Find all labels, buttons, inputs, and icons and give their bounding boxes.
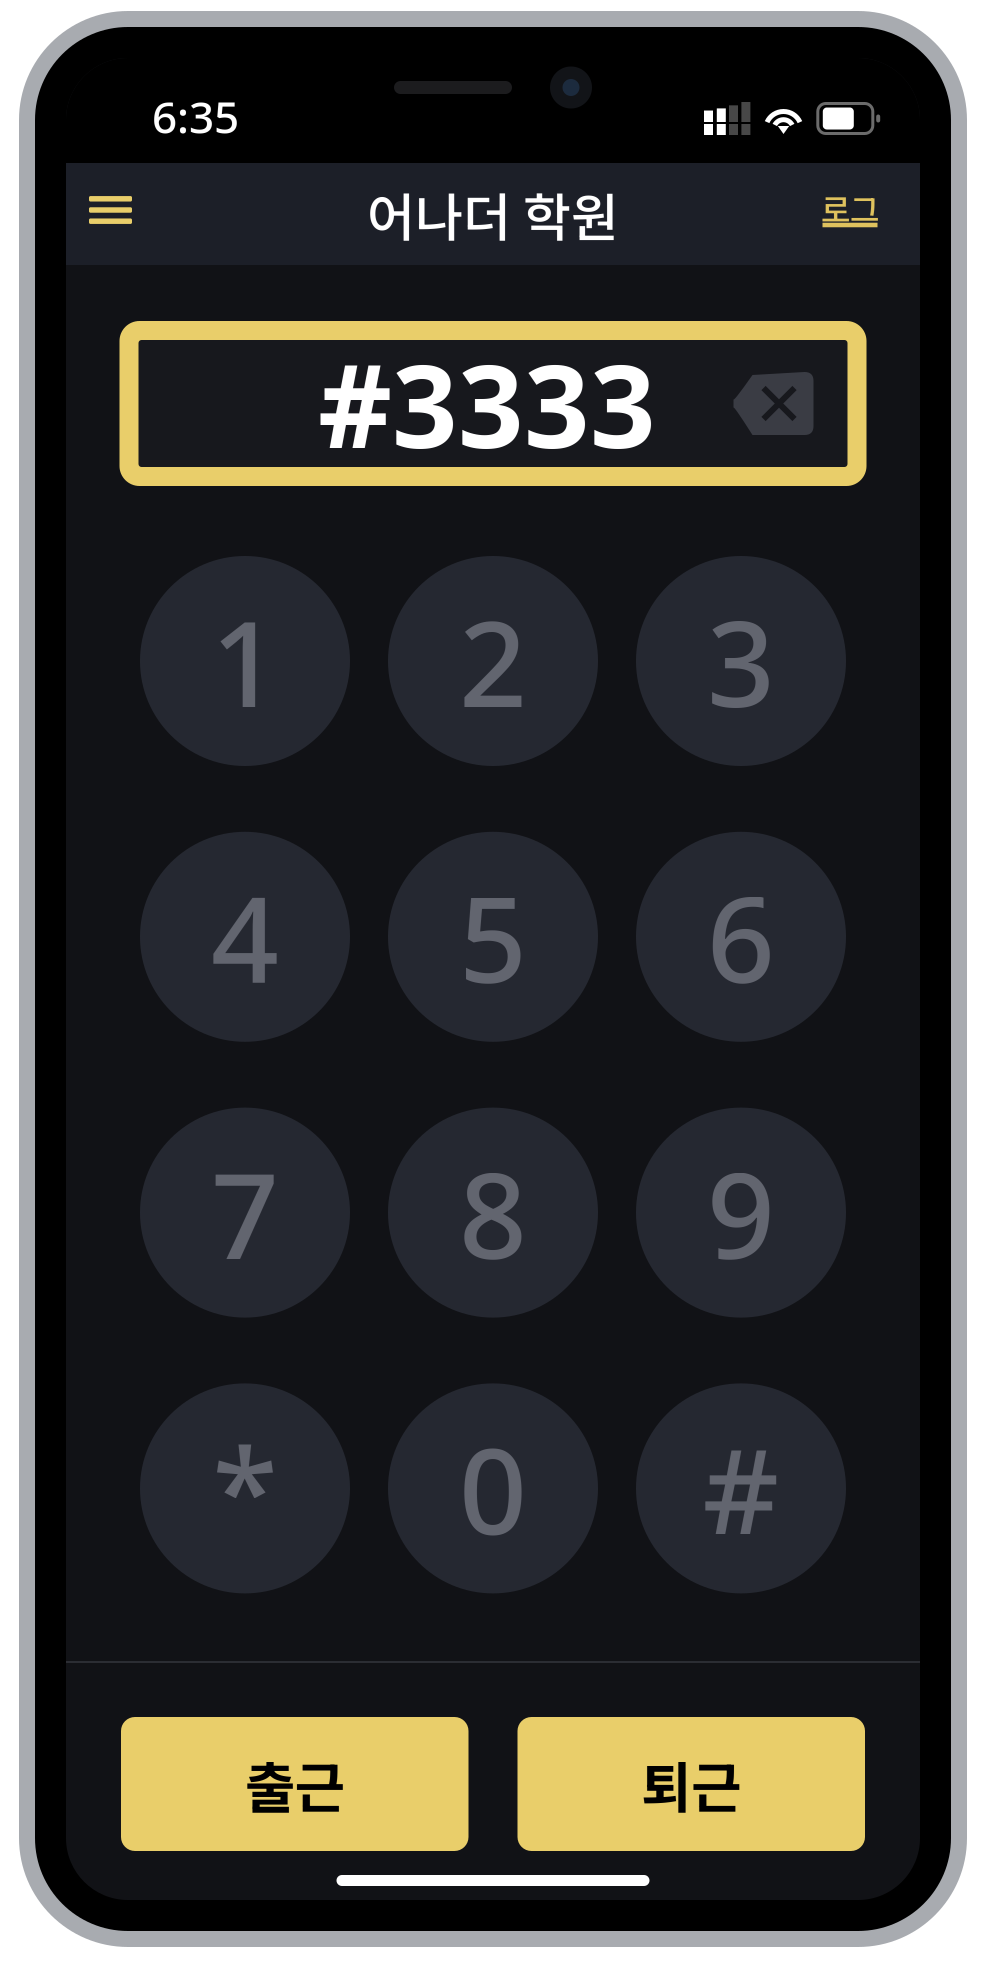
staticText: *: [212, 1410, 277, 1567]
button[interactable]: 0: [388, 1383, 598, 1593]
staticText: #3333: [318, 327, 656, 480]
button[interactable]: Menu: [66, 163, 155, 257]
button[interactable]: 7: [140, 1108, 350, 1318]
staticText: 5: [459, 858, 527, 1016]
button[interactable]: 출근: [121, 1717, 468, 1851]
staticText: 3: [707, 582, 775, 740]
staticText: 출근: [245, 1744, 345, 1824]
button[interactable]: #: [636, 1383, 846, 1593]
staticText: 8: [459, 1134, 527, 1291]
staticText: 6: [707, 858, 775, 1016]
button[interactable]: *: [140, 1383, 350, 1593]
staticText: 4: [211, 858, 279, 1016]
button[interactable]: 2: [388, 556, 598, 766]
button[interactable]: 6: [636, 832, 846, 1042]
button[interactable]: 4: [140, 832, 350, 1042]
staticText: 6:35: [152, 87, 239, 146]
button[interactable]: 퇴근: [517, 1717, 865, 1851]
button[interactable]: 8: [388, 1108, 598, 1318]
staticText: 9: [707, 1134, 775, 1291]
button[interactable]: Delete: [730, 372, 813, 435]
button[interactable]: 9: [636, 1108, 846, 1318]
staticText: 퇴근: [641, 1744, 741, 1824]
staticText: #: [702, 1410, 779, 1567]
staticText: 1: [211, 582, 279, 740]
staticText: 0: [459, 1410, 527, 1567]
button[interactable]: 5: [388, 832, 598, 1042]
staticText: 7: [211, 1134, 279, 1291]
button[interactable]: 3: [636, 556, 846, 766]
button[interactable]: 1: [140, 556, 350, 766]
staticText: 로그: [821, 185, 879, 231]
staticText: 2: [459, 582, 527, 740]
button[interactable]: 로그: [780, 169, 920, 253]
staticText: 어나더 학원: [367, 176, 619, 252]
